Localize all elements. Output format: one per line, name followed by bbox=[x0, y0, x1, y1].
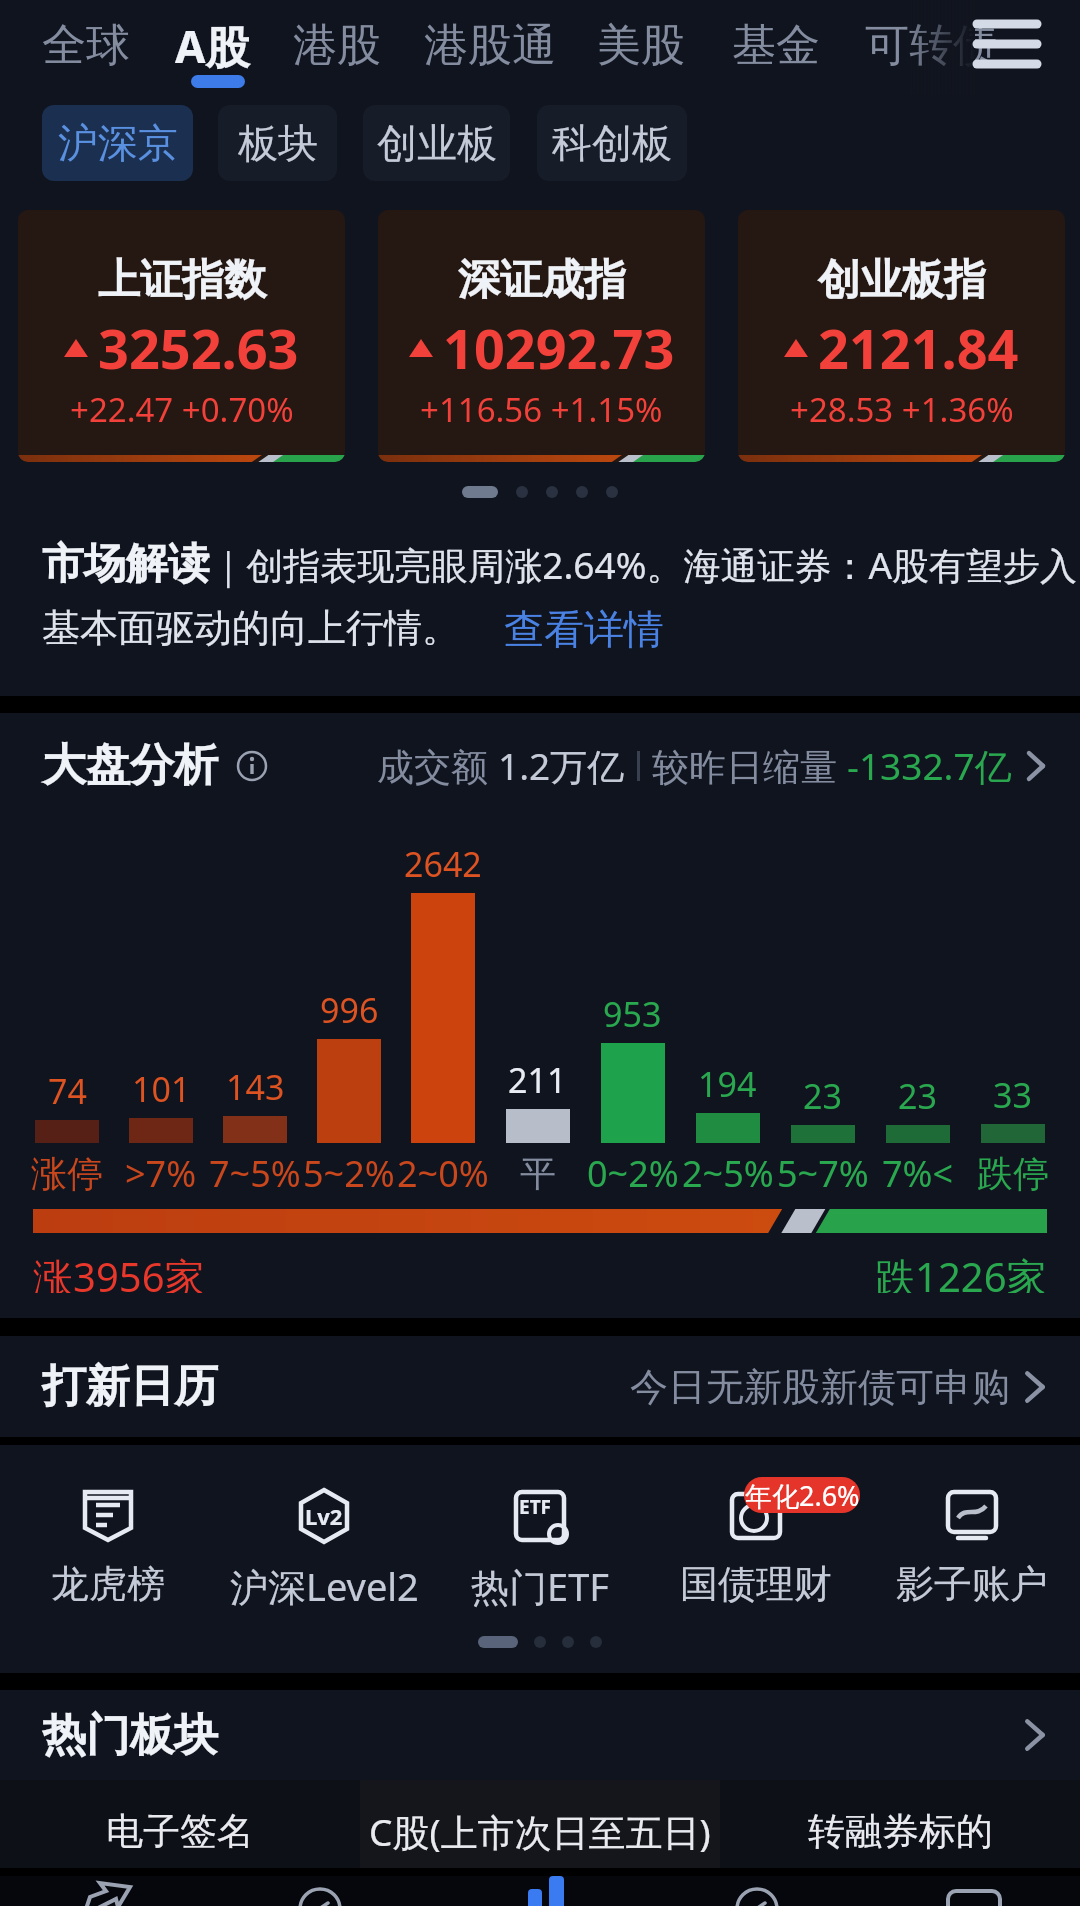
button[interactable]: 全球 bbox=[42, 18, 130, 73]
staticText: 2~5% bbox=[682, 1149, 774, 1198]
staticText: 10292.73 bbox=[443, 311, 675, 385]
button[interactable] bbox=[735, 1885, 779, 1906]
staticText: 热门板块 bbox=[42, 1708, 218, 1763]
staticText: 电子签名 bbox=[106, 1808, 254, 1855]
button[interactable]: 上证指数 bbox=[18, 210, 345, 462]
button[interactable]: 创业板指 bbox=[738, 210, 1065, 462]
button[interactable] bbox=[80, 1881, 136, 1906]
staticText: 0~2% bbox=[587, 1149, 679, 1198]
button[interactable]: A股 bbox=[175, 16, 250, 76]
staticText: 跌停 bbox=[977, 1151, 1049, 1196]
staticText: 2121.84 bbox=[818, 311, 1019, 385]
staticText: 市场解读 bbox=[42, 538, 210, 591]
staticText: 大盘分析 bbox=[42, 738, 218, 793]
staticText: 基本面驱动的向上行情。 bbox=[42, 604, 460, 652]
staticText: 沪深Level2 bbox=[230, 1560, 419, 1612]
staticText: 较昨日缩量 bbox=[652, 740, 847, 791]
button[interactable]: 美股 bbox=[597, 18, 685, 73]
button[interactable]: 打新日历 bbox=[0, 1336, 1080, 1437]
staticText: 3252.63 bbox=[98, 311, 299, 385]
staticText: 今日无新股新债可申购 bbox=[630, 1363, 1010, 1411]
staticText: ETF bbox=[519, 1494, 552, 1520]
staticText: 23 bbox=[803, 1073, 842, 1119]
button[interactable]: 龙虎榜 bbox=[0, 1488, 216, 1608]
staticText: 7%< bbox=[882, 1149, 954, 1198]
button[interactable]: 板块 bbox=[218, 105, 337, 181]
staticText: +28.53 +1.36% bbox=[790, 387, 1014, 432]
staticText: 沪深京 bbox=[58, 118, 178, 168]
button[interactable]: 查看详情 bbox=[504, 604, 664, 654]
staticText: 创业板指 bbox=[818, 254, 986, 307]
button[interactable]: 影子账户 bbox=[864, 1488, 1080, 1608]
staticText: 涨3956家 bbox=[33, 1249, 205, 1293]
staticText: 33 bbox=[993, 1072, 1032, 1118]
staticText: 龙虎榜 bbox=[51, 1560, 165, 1608]
staticText: 创业板 bbox=[377, 118, 497, 168]
staticText: 23 bbox=[898, 1073, 937, 1119]
button[interactable]: 年化2.6% bbox=[648, 1488, 864, 1608]
staticText: 深证成指 bbox=[458, 254, 626, 307]
staticText: 热门ETF bbox=[471, 1560, 609, 1612]
button[interactable] bbox=[298, 1885, 342, 1906]
staticText: +116.56 +1.15% bbox=[420, 387, 663, 432]
staticText: 5~7% bbox=[777, 1149, 869, 1198]
button[interactable]: 科创板 bbox=[537, 105, 687, 181]
staticText: Lv2 bbox=[305, 1501, 343, 1531]
staticText: 101 bbox=[132, 1066, 191, 1112]
staticText: 7~5% bbox=[209, 1149, 301, 1198]
staticText: 953 bbox=[603, 991, 662, 1037]
staticText: 74 bbox=[48, 1068, 87, 1114]
staticText: 2~0% bbox=[397, 1149, 489, 1198]
button[interactable]: 电子签名 bbox=[0, 1780, 360, 1868]
staticText: 成交额 bbox=[377, 740, 498, 791]
staticText: -1332.7亿 bbox=[847, 740, 1012, 791]
staticText: 平 bbox=[520, 1151, 556, 1196]
staticText: 5~2% bbox=[303, 1149, 395, 1198]
staticText: 2642 bbox=[404, 841, 482, 887]
staticText: 上证指数 bbox=[98, 254, 266, 307]
staticText: 1.2万亿 bbox=[498, 740, 625, 791]
button[interactable] bbox=[946, 1889, 1002, 1906]
button[interactable]: 转融券标的 bbox=[720, 1780, 1080, 1868]
staticText: ｜创指表现亮眼周涨2.64%。海通证券：A股有望步入 bbox=[210, 539, 1078, 590]
staticText: 科创板 bbox=[552, 118, 672, 168]
staticText: C股(上市次日至五日) bbox=[369, 1806, 711, 1857]
button[interactable]: 创业板 bbox=[363, 105, 510, 181]
staticText: 国债理财 bbox=[680, 1560, 832, 1608]
staticText: 打新日历 bbox=[42, 1359, 218, 1414]
button[interactable]: 可转债 bbox=[865, 18, 997, 73]
staticText: 影子账户 bbox=[896, 1560, 1048, 1608]
staticText: 143 bbox=[226, 1064, 285, 1110]
staticText: >7% bbox=[125, 1149, 197, 1198]
staticText: 转融券标的 bbox=[808, 1808, 993, 1855]
staticText: 194 bbox=[698, 1061, 757, 1107]
button[interactable]: 深证成指 bbox=[378, 210, 705, 462]
staticText: 板块 bbox=[238, 118, 318, 168]
button[interactable]: Lv2 bbox=[216, 1488, 432, 1612]
staticText: 年化2.6% bbox=[745, 1477, 860, 1513]
staticText: 996 bbox=[320, 987, 379, 1033]
button[interactable]: ETF bbox=[432, 1488, 648, 1612]
staticText: 跌1226家 bbox=[875, 1249, 1047, 1293]
button[interactable] bbox=[526, 1876, 570, 1906]
button[interactable]: 热门板块 bbox=[0, 1690, 1080, 1780]
button[interactable]: 港股通 bbox=[424, 18, 556, 73]
button[interactable]: C股(上市次日至五日) bbox=[360, 1780, 720, 1868]
staticText: +22.47 +0.70% bbox=[70, 387, 294, 432]
button[interactable]: 沪深京 bbox=[42, 105, 193, 181]
button[interactable] bbox=[975, 18, 1039, 70]
staticText: 涨停 bbox=[31, 1151, 103, 1196]
button[interactable]: 基金 bbox=[732, 18, 820, 73]
staticText: 211 bbox=[508, 1057, 567, 1103]
button[interactable]: 港股 bbox=[293, 18, 381, 73]
